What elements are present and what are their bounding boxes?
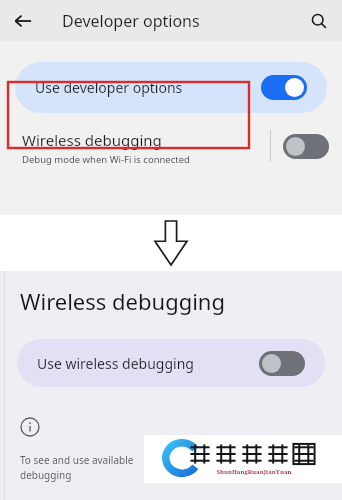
- button[interactable]: Toggle on: [261, 75, 307, 100]
- button[interactable]: Wireless debugging toggle: [283, 134, 329, 159]
- button[interactable]: Wireless debugging: [22, 130, 242, 166]
- button[interactable]: Search: [304, 6, 334, 36]
- staticText: Wireless debugging: [22, 130, 162, 150]
- button[interactable]: Use wireless debugging: [17, 339, 325, 387]
- staticText: Debug mode when Wi-Fi is connected: [22, 153, 190, 166]
- button[interactable]: Use developer options: [15, 62, 327, 113]
- staticText: Use developer options: [35, 78, 183, 97]
- staticText: To see and use available debugging: [20, 453, 134, 482]
- staticText: Wireless debugging: [20, 286, 225, 316]
- staticText: Developer options: [62, 10, 200, 32]
- button[interactable]: Information: [20, 417, 40, 437]
- button[interactable]: Toggle off: [283, 134, 329, 159]
- button[interactable]: Back: [10, 8, 36, 34]
- button[interactable]: Toggle off: [259, 351, 305, 376]
- staticText: ShunHangRuanJianYuan: [216, 468, 292, 476]
- staticText: Use wireless debugging: [37, 354, 194, 373]
